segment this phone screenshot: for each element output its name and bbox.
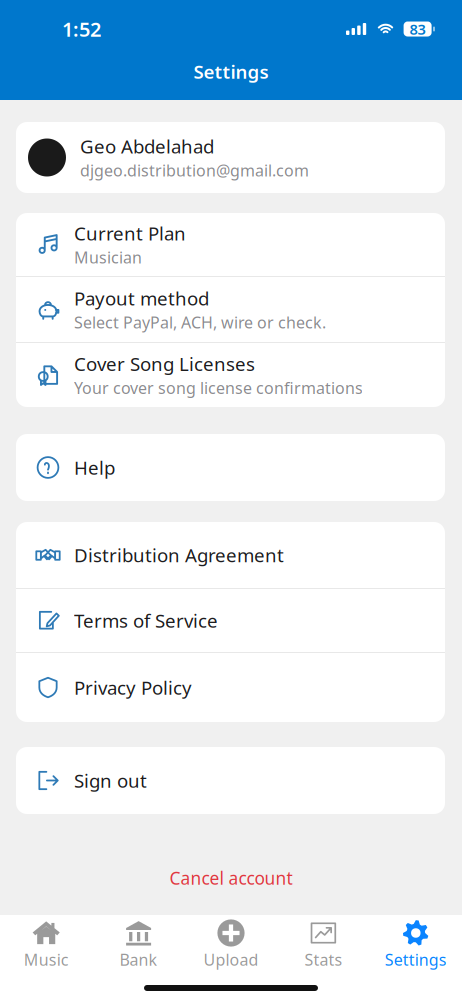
staticText: Cover Song Licenses	[74, 351, 255, 376]
button[interactable]: Terms of Service	[16, 589, 445, 652]
staticText: Select PayPal, ACH, wire or check.	[74, 312, 326, 333]
staticText: Payout method	[74, 286, 209, 311]
staticText: Settings	[385, 949, 447, 970]
staticText: Stats	[304, 949, 342, 970]
button[interactable]: Settings	[370, 915, 462, 970]
staticText: Settings	[193, 59, 268, 84]
button[interactable]: Privacy Policy	[16, 653, 445, 722]
staticText: Musician	[74, 247, 142, 268]
staticText: Music	[24, 949, 69, 970]
button[interactable]: Bank	[92, 915, 185, 970]
staticText: Privacy Policy	[74, 675, 192, 700]
staticText: Geo Abdelahad	[80, 134, 214, 159]
button[interactable]: Distribution Agreement	[16, 522, 445, 588]
staticText: Terms of Service	[74, 608, 218, 633]
staticText: Current Plan	[74, 221, 186, 246]
staticText: djgeo.distribution@gmail.com	[80, 160, 309, 181]
button[interactable]: Music	[0, 915, 92, 970]
button[interactable]: Current Plan	[16, 213, 445, 276]
button[interactable]: Help	[16, 434, 445, 501]
staticText: Sign out	[74, 768, 147, 793]
staticText: Help	[74, 455, 115, 480]
button[interactable]: Geo Abdelahad	[16, 122, 445, 193]
staticText: Your cover song license confirmations	[74, 377, 363, 398]
staticText: Upload	[203, 949, 258, 970]
staticText: Cancel account	[169, 866, 292, 889]
staticText: 83	[410, 19, 426, 39]
button[interactable]: Cover Song Licenses	[16, 343, 445, 407]
button[interactable]: Sign out	[16, 747, 445, 814]
button[interactable]: Stats	[277, 915, 370, 970]
button[interactable]: Cancel account	[0, 856, 462, 900]
staticText: 1:52	[62, 16, 101, 42]
button[interactable]: Upload	[185, 915, 277, 970]
staticText: Bank	[120, 949, 158, 970]
staticText: Distribution Agreement	[74, 543, 284, 567]
button[interactable]: Payout method	[16, 277, 445, 342]
